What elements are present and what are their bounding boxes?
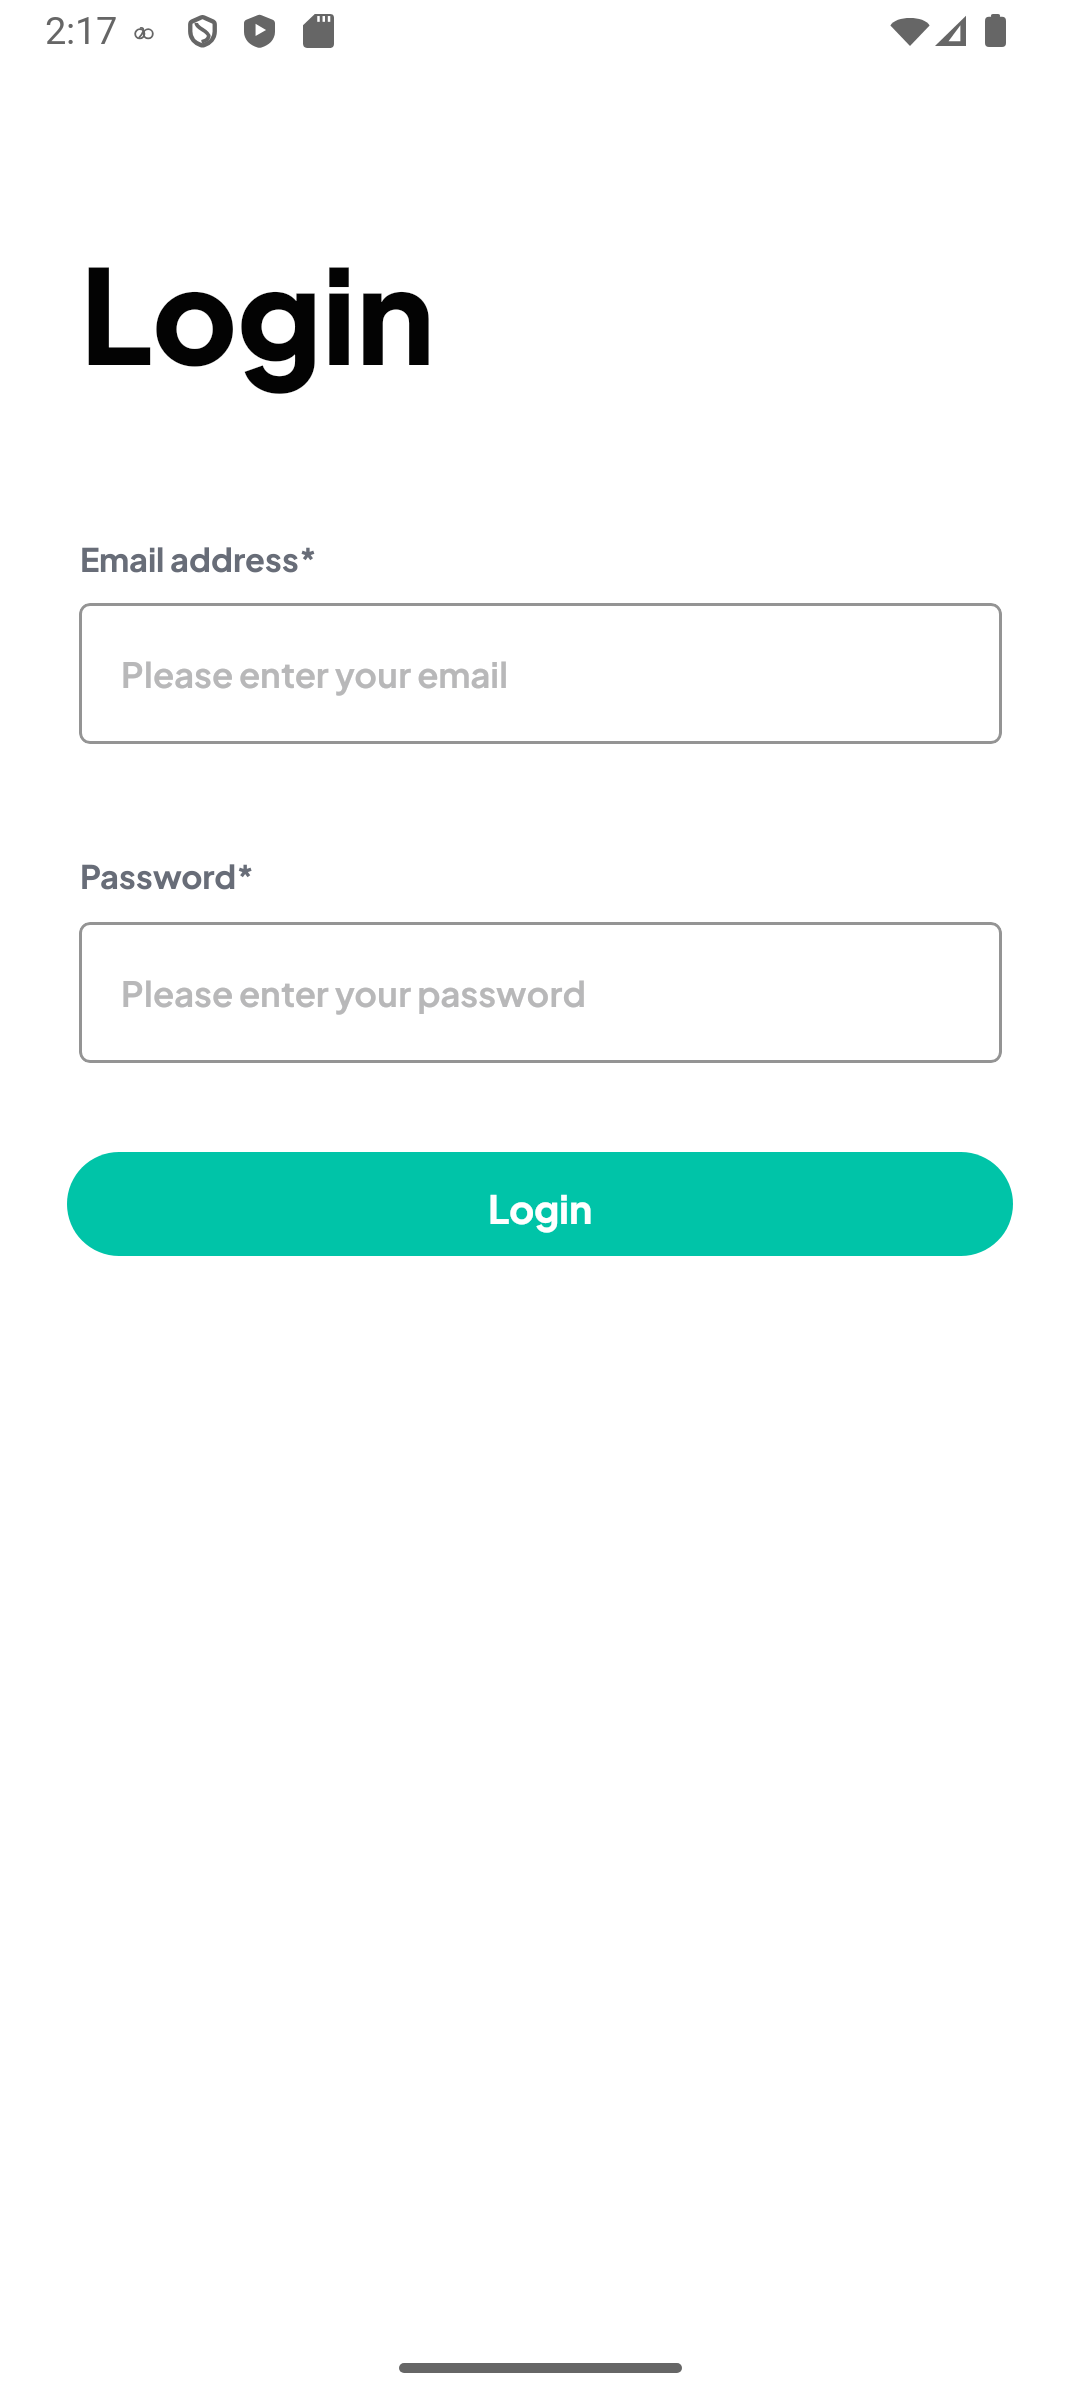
button[interactable]: Login [67, 1152, 1013, 1256]
other: Password* [80, 857, 600, 901]
other: Email address* [80, 540, 600, 584]
button[interactable]: Please enter your email [79, 603, 1002, 744]
button[interactable]: Please enter your password [79, 922, 1002, 1063]
other: Login [80, 240, 500, 420]
